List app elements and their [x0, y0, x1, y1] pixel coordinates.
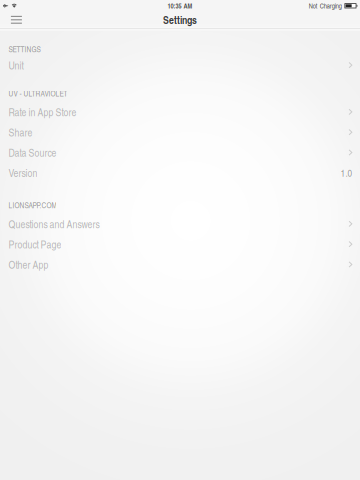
staticText: 1.0 [340, 166, 352, 180]
staticText: Not Charging [309, 1, 342, 10]
staticText: Rate in App Store [8, 105, 76, 119]
staticText: LIONSAPP.COM [8, 199, 56, 210]
button[interactable]: Product Page [0, 234, 360, 254]
staticText: Questions and Answers [8, 216, 99, 231]
button[interactable]: Unit [0, 55, 360, 75]
button[interactable]: Other App [0, 254, 360, 275]
button[interactable]: Menu [5, 12, 27, 28]
staticText: Unit [8, 58, 23, 72]
staticText: SETTINGS [8, 43, 40, 54]
staticText: Other App [8, 257, 48, 272]
staticText: Settings [163, 12, 197, 27]
button[interactable]: Version [0, 163, 360, 183]
button[interactable]: Share [0, 122, 360, 142]
staticText: Product Page [8, 237, 61, 251]
button[interactable]: Questions and Answers [0, 214, 360, 234]
staticText: UV - ULTRAVIOLET [8, 88, 67, 99]
staticText: Share [8, 125, 32, 139]
staticText: 10:35 AM [167, 1, 192, 11]
staticText: Version [8, 165, 37, 180]
button[interactable]: Data Source [0, 142, 360, 163]
staticText: Data Source [8, 145, 56, 160]
button[interactable]: Rate in App Store [0, 102, 360, 122]
